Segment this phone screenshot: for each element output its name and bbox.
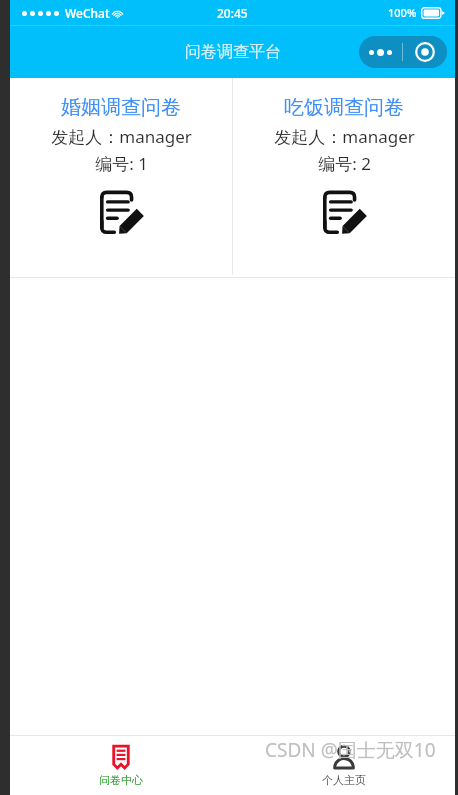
button[interactable]: 问卷中心 (10, 736, 232, 795)
staticText: 发起人：manager (274, 125, 415, 148)
staticText: WeChat (65, 5, 110, 21)
staticText: CSDN @国士无双10 (265, 737, 436, 763)
staticText: 吃饭调查问卷 (284, 95, 404, 120)
staticText: 100% (388, 5, 417, 20)
staticText: 个人主页 (322, 773, 366, 787)
staticText: 婚姻调查问卷 (61, 95, 181, 120)
button[interactable]: 个人主页 (232, 736, 455, 795)
button[interactable]: Menu and close (359, 36, 447, 68)
button[interactable]: 吃饭调查问卷 (233, 78, 455, 278)
staticText: 问卷中心 (99, 773, 143, 787)
staticText: 20:45 (217, 5, 248, 21)
button[interactable]: 婚姻调查问卷 (10, 78, 232, 278)
staticText: 编号: 1 (95, 152, 148, 175)
staticText: 编号: 2 (318, 152, 371, 175)
staticText: 问卷调查平台 (185, 42, 281, 62)
staticText: 发起人：manager (51, 125, 192, 148)
